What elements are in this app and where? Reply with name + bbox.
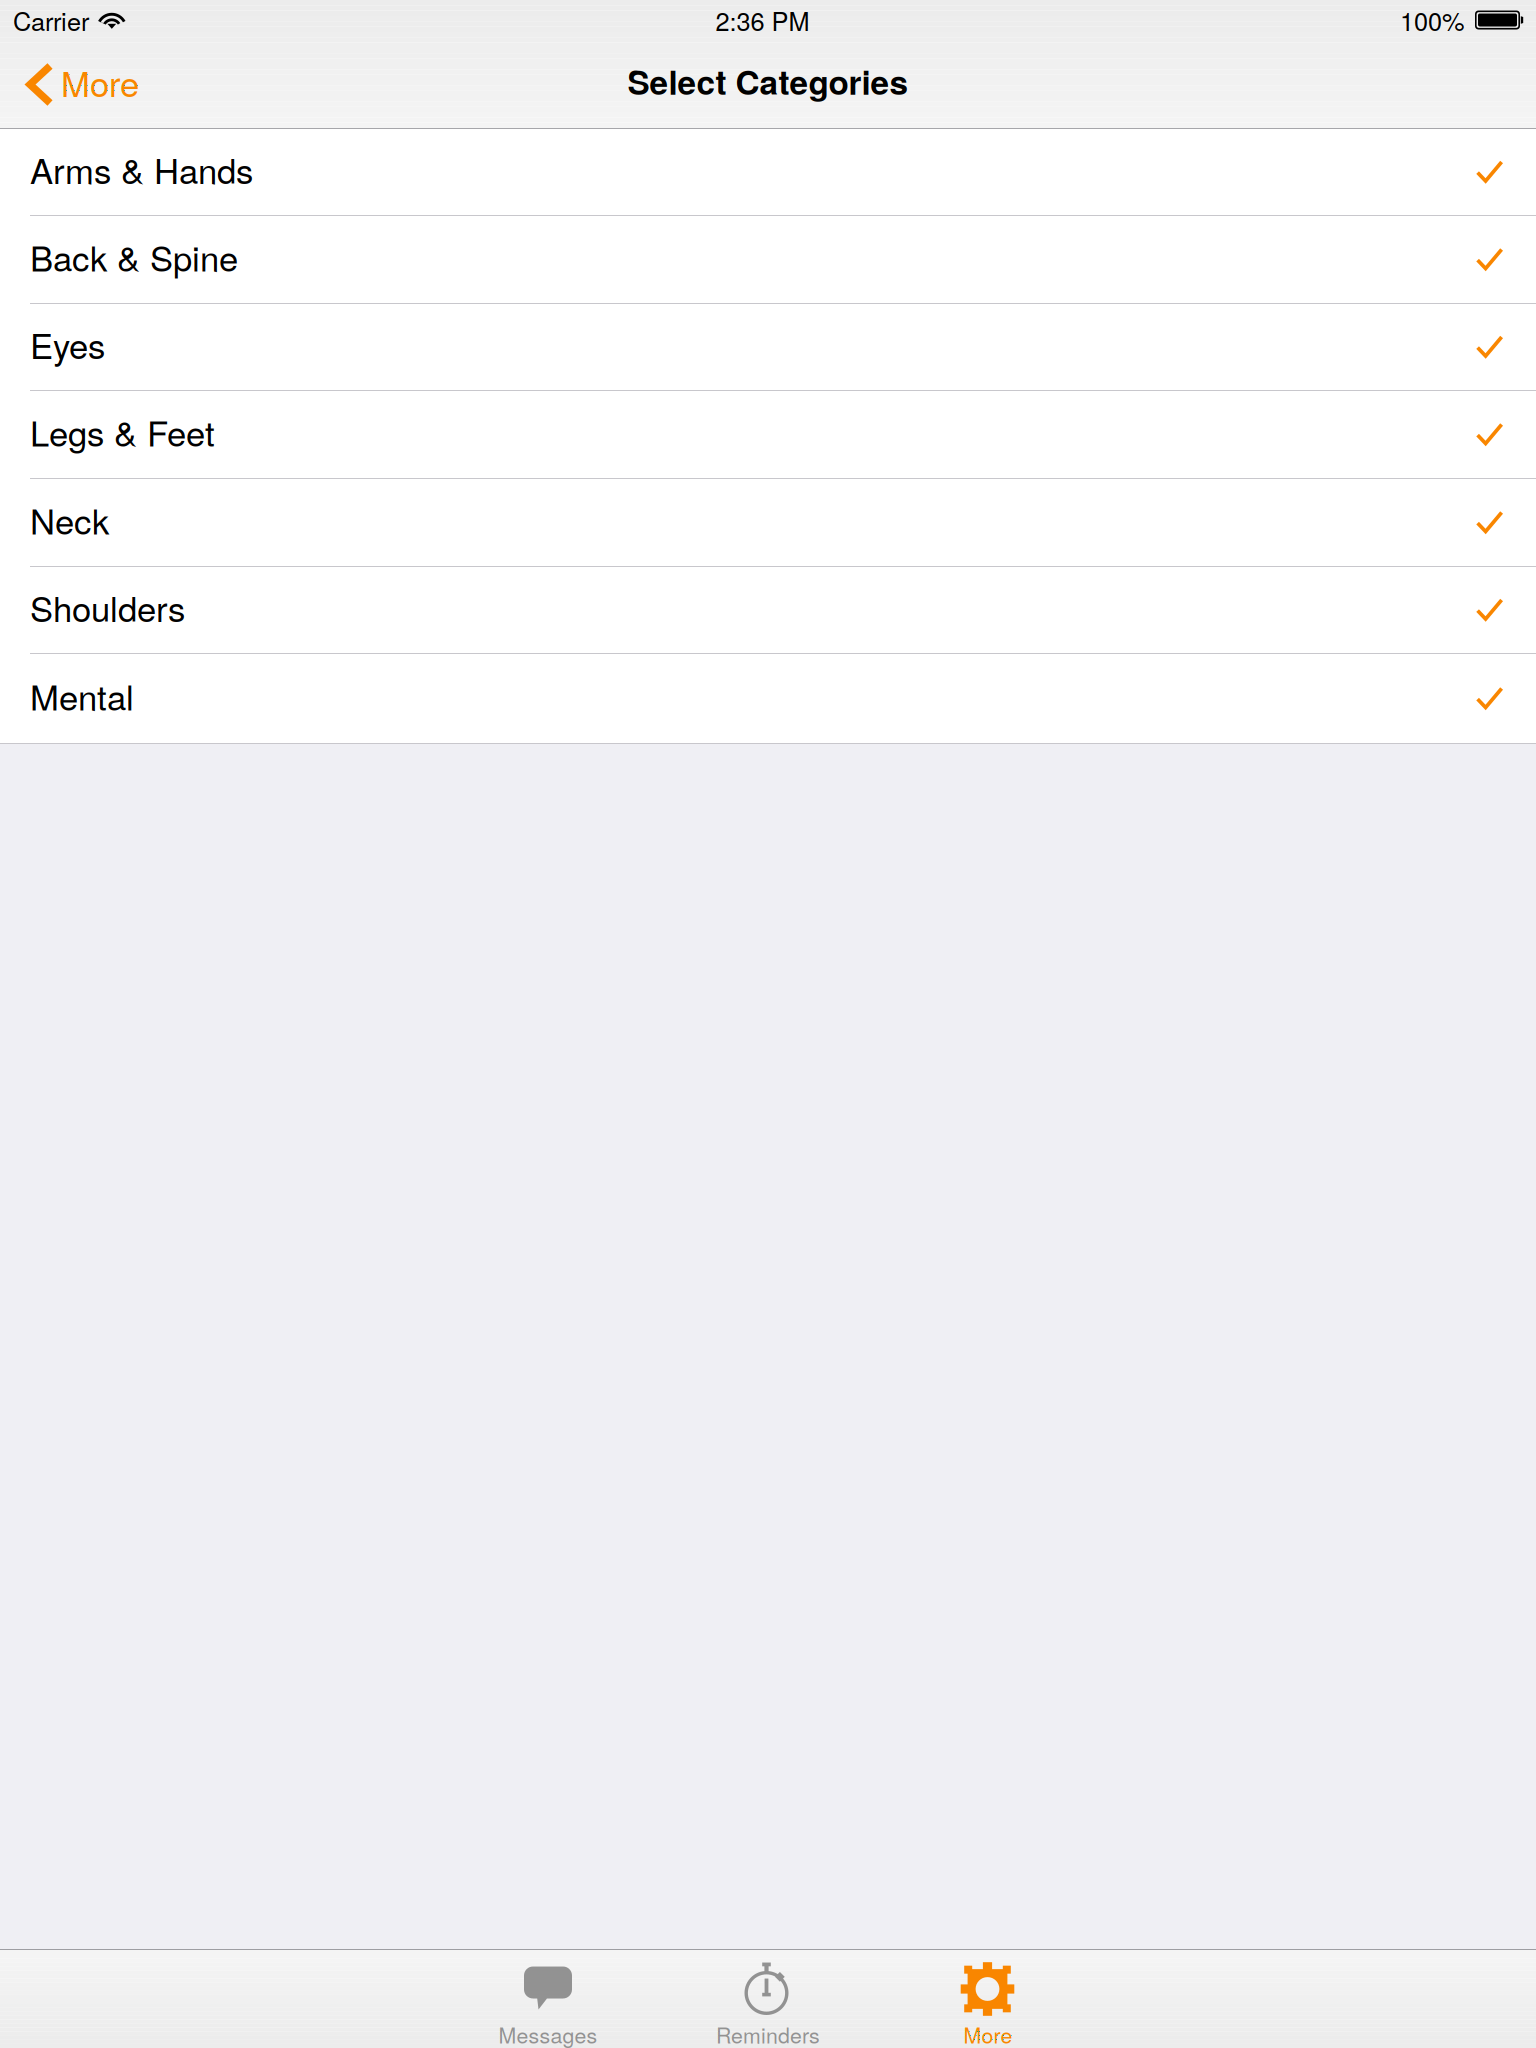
staticText: More [61, 57, 139, 107]
staticText: Reminders [716, 2019, 820, 2048]
button[interactable]: Neck [0, 479, 1536, 567]
staticText: Arms & Hands [30, 144, 253, 194]
button[interactable]: Eyes [0, 304, 1536, 391]
staticText: Carrier [13, 2, 89, 38]
staticText: 100% [1400, 2, 1465, 38]
staticText: Select Categories [627, 57, 908, 105]
button[interactable]: Back & Spine [0, 216, 1536, 304]
staticText: Legs & Feet [30, 407, 215, 456]
staticText: Back & Spine [30, 232, 238, 281]
staticText: 2:36 PM [715, 2, 809, 38]
button[interactable]: Arms & Hands [0, 129, 1536, 216]
staticText: Mental [30, 671, 134, 720]
staticText: Messages [498, 2019, 597, 2048]
button[interactable]: More [0, 40, 157, 128]
staticText: Eyes [30, 319, 105, 369]
button[interactable]: Messages [438, 1950, 658, 2048]
staticText: Neck [30, 495, 109, 544]
button[interactable]: More [878, 1950, 1098, 2048]
button[interactable]: Mental [0, 654, 1536, 744]
staticText: More [963, 2019, 1012, 2048]
button[interactable]: Shoulders [0, 567, 1536, 654]
button[interactable]: Reminders [658, 1950, 878, 2048]
button[interactable]: Legs & Feet [0, 391, 1536, 479]
staticText: Shoulders [30, 582, 185, 632]
